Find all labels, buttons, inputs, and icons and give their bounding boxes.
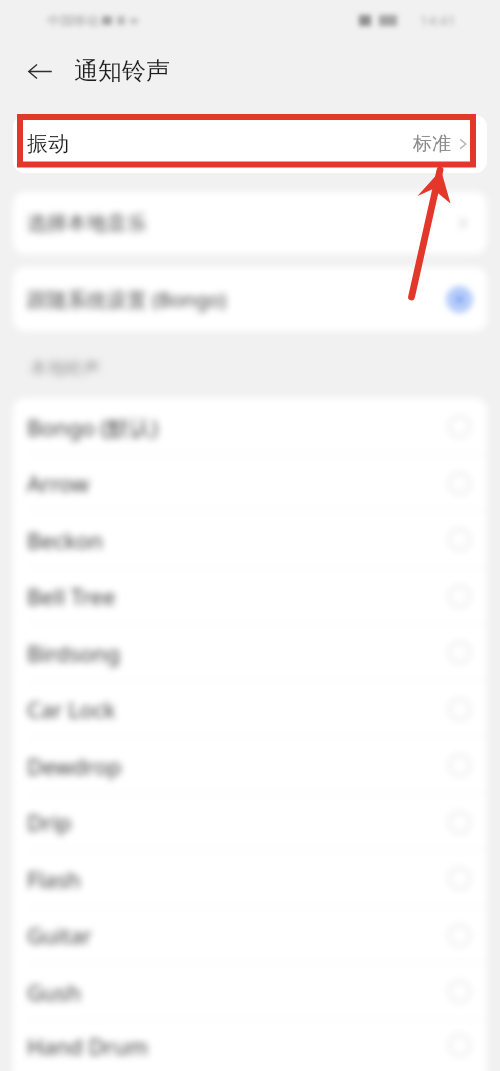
staticText: 选择本地音乐 bbox=[27, 211, 147, 236]
button[interactable]: Bongo (默认) bbox=[13, 398, 487, 455]
staticText: 标准 bbox=[413, 132, 451, 156]
button[interactable]: Guitar bbox=[13, 907, 487, 963]
button[interactable]: Flash bbox=[13, 850, 487, 907]
staticText: Bongo (默认) bbox=[27, 412, 158, 442]
staticText: 14:41 bbox=[420, 11, 456, 30]
button[interactable]: Car Lock bbox=[13, 681, 487, 737]
button[interactable]: Bell Tree bbox=[13, 568, 487, 624]
staticText: Gush bbox=[27, 977, 81, 1007]
staticText: 本地铃声 bbox=[30, 357, 100, 379]
button[interactable]: Birdsong bbox=[13, 624, 487, 681]
staticText: Birdsong bbox=[27, 638, 121, 668]
staticText: Dewdrop bbox=[27, 751, 122, 781]
staticText: 振动 bbox=[27, 131, 69, 157]
staticText: Hand Drum bbox=[27, 1031, 148, 1061]
staticText: Flash bbox=[27, 864, 81, 894]
button[interactable]: Hand Drum bbox=[13, 1020, 487, 1071]
button[interactable]: Drip bbox=[13, 794, 487, 850]
staticText: 中国移动 bbox=[47, 12, 99, 28]
button[interactable]: Arrow bbox=[13, 455, 487, 511]
button[interactable]: 振动 bbox=[13, 115, 487, 173]
button[interactable]: 跟随系统设置 (Bongo) bbox=[13, 267, 487, 331]
button[interactable]: Gush bbox=[13, 963, 487, 1020]
staticText: Arrow bbox=[27, 468, 89, 498]
staticText: Bell Tree bbox=[27, 581, 116, 611]
staticText: Car Lock bbox=[27, 694, 116, 724]
button[interactable]: Dewdrop bbox=[13, 737, 487, 794]
button[interactable]: Back bbox=[22, 54, 56, 88]
staticText: 跟随系统设置 (Bongo) bbox=[27, 286, 227, 313]
staticText: Beckon bbox=[27, 525, 103, 555]
staticText: Drip bbox=[27, 807, 72, 837]
button[interactable]: Beckon bbox=[13, 511, 487, 568]
staticText: 通知铃声 bbox=[74, 56, 170, 86]
button[interactable]: 选择本地音乐 bbox=[13, 192, 487, 254]
staticText: Guitar bbox=[27, 920, 92, 950]
